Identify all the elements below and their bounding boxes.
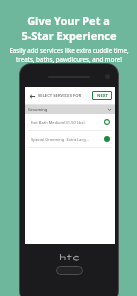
staticText: Give Your Pet a — [27, 13, 110, 28]
button[interactable]: Grooming — [28, 105, 112, 114]
staticText: Exit Bath Medium(31-50 Lbs) — [31, 120, 104, 125]
staticText: 5-Star Experience — [21, 28, 117, 43]
button[interactable]: Home — [56, 266, 83, 275]
staticText: Grooming — [28, 107, 107, 112]
button[interactable]: Special Grooming -Extra Larg... — [31, 131, 110, 147]
button[interactable]: Exit Bath Medium(31-50 Lbs) — [31, 114, 110, 130]
button[interactable]: Back — [28, 92, 36, 100]
staticText: treats, baths, pawdicures, and more! — [16, 55, 122, 63]
staticText: Easily add services like extra cuddle ti… — [9, 46, 129, 54]
button[interactable]: NEXT — [92, 91, 112, 100]
staticText: SELECT SERVICES FOR BUDDY — [38, 93, 90, 99]
staticText: Special Grooming -Extra Larg... — [31, 137, 104, 142]
staticText: NEXT — [97, 93, 108, 99]
